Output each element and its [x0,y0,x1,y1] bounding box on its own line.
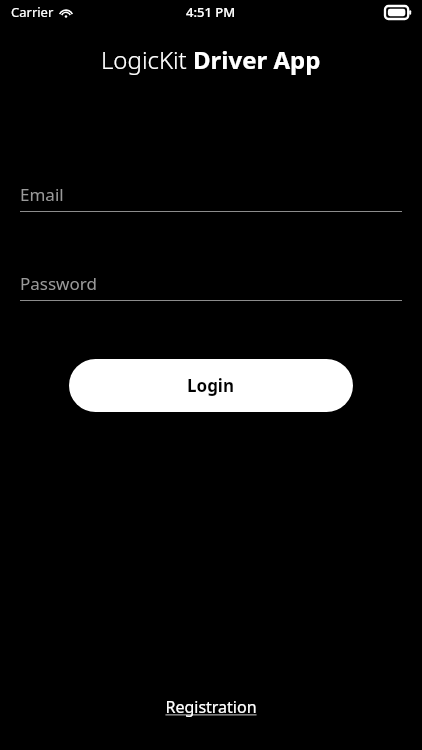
staticText: Email [20,183,64,206]
staticText: 4:51 PM [186,3,236,21]
staticText: Carrier [11,3,54,21]
other: Battery full [385,6,412,19]
button[interactable]: Password [20,272,402,301]
button[interactable]: Registration [155,690,267,724]
staticText: Registration [165,696,257,718]
button[interactable]: Email [20,183,402,212]
staticText: Login [187,374,235,397]
staticText: Password [20,272,97,295]
staticText: LogicKit Driver App [101,43,321,76]
button[interactable]: Login [69,359,353,412]
